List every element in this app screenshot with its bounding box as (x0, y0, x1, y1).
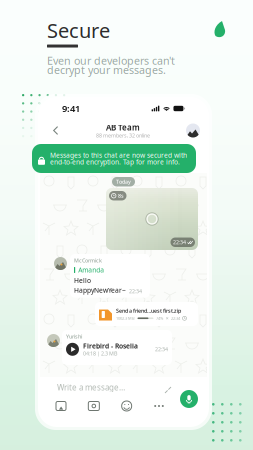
button[interactable]: Play Firebird - Roselia (66, 343, 79, 356)
staticText: end-to-end encryption. Tap for more info… (50, 157, 180, 166)
button[interactable]: Record voice message (180, 390, 198, 408)
staticText: Send a friend…uest first.zip (116, 307, 181, 314)
staticText: 22:34 (171, 316, 180, 321)
staticText: 22:34 (173, 239, 186, 246)
staticText: 22:34 (129, 288, 142, 295)
button[interactable]: Back (47, 121, 64, 140)
staticText: HappyNewYear~ (74, 286, 126, 295)
staticText: 22:34 (155, 346, 168, 353)
staticText: ✕ (165, 316, 168, 320)
staticText: Write a message… (57, 382, 125, 393)
staticText: 74% (156, 316, 163, 321)
button[interactable]: Messages to this chat are now secured wi… (32, 144, 196, 173)
staticText: Amanda (78, 266, 104, 274)
button[interactable]: Group info (182, 120, 200, 140)
staticText: Even our developers can't (47, 54, 175, 68)
staticText: decrypt your messages. (47, 63, 166, 77)
staticText: Messages to this chat are now secured wi… (50, 151, 187, 159)
staticText: Firebird - Roselia (83, 342, 138, 350)
staticText: Today (116, 178, 131, 185)
staticText: 8s (118, 192, 124, 199)
button[interactable]: Expand (161, 383, 175, 397)
staticText: Secure (47, 17, 110, 44)
staticText: 9:41 (62, 102, 80, 115)
button[interactable]: Camera (85, 398, 102, 413)
staticText: McCormick (74, 257, 102, 264)
staticText: 04:18 | 2.3 MB (83, 350, 117, 357)
button[interactable]: Emoji (119, 398, 135, 414)
button[interactable]: More (151, 401, 167, 410)
staticText: 1002.3 MB (116, 316, 135, 321)
button[interactable]: Photos (53, 398, 69, 413)
staticText: 88 members, 32 online (96, 132, 150, 139)
staticText: Yurishi (66, 333, 82, 340)
staticText: Hello (74, 276, 91, 285)
staticText: AB Team (106, 122, 140, 133)
